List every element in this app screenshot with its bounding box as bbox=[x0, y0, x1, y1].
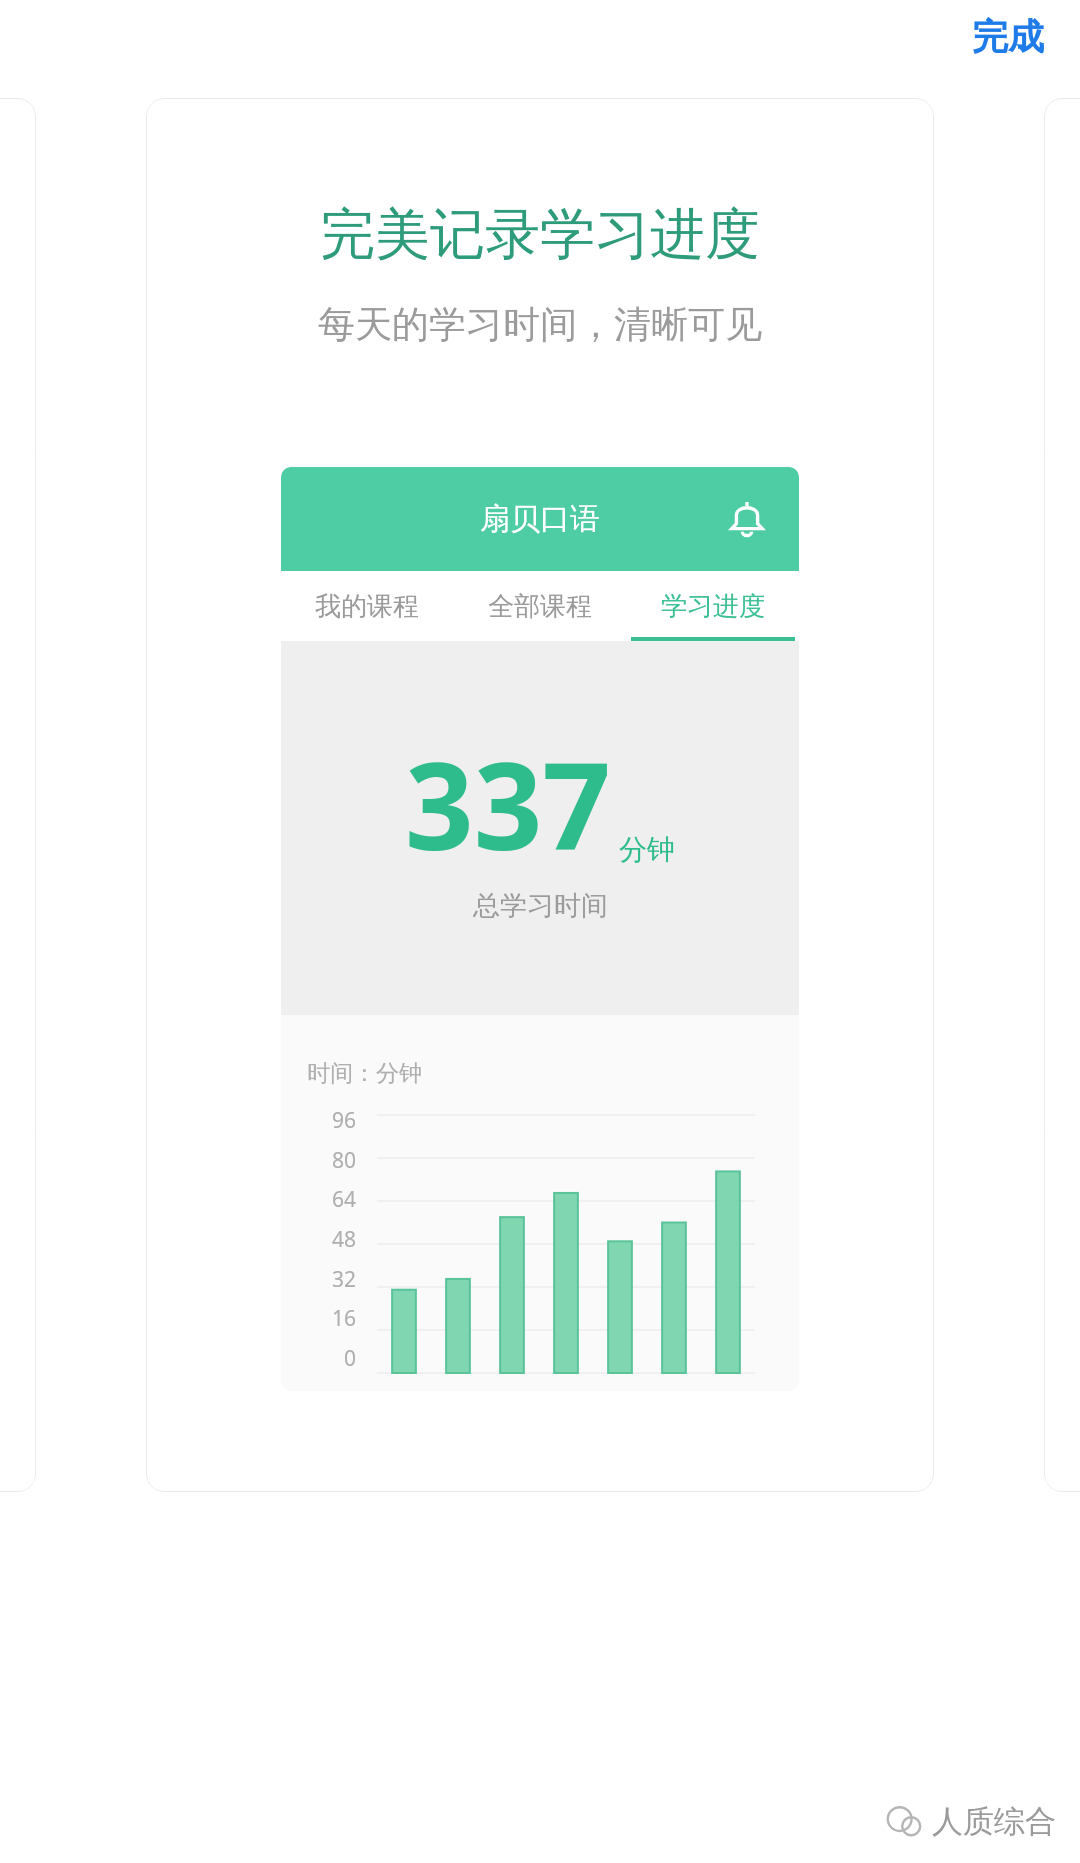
staticText: 时间：分钟 bbox=[307, 1059, 422, 1088]
staticText: 32 bbox=[332, 1265, 357, 1294]
button[interactable]: 我的课程 bbox=[281, 571, 453, 641]
staticText: 16 bbox=[332, 1304, 357, 1333]
button[interactable]: 完美记录学习进度 bbox=[146, 98, 934, 1492]
staticText: 人质综合 bbox=[932, 1802, 1056, 1841]
staticText: 64 bbox=[332, 1185, 357, 1214]
staticText: 80 bbox=[332, 1146, 357, 1175]
staticText: 完美记录学习进度 bbox=[320, 200, 760, 269]
button[interactable]: 完成 bbox=[958, 2, 1058, 71]
staticText: 全部课程 bbox=[488, 590, 592, 623]
staticText: 0 bbox=[344, 1344, 357, 1373]
button[interactable]: 学习进度 bbox=[626, 571, 799, 641]
staticText: 每天的学习时间，清晰可见 bbox=[318, 301, 762, 348]
staticText: 分钟 bbox=[619, 832, 675, 867]
staticText: 学习进度 bbox=[661, 590, 765, 623]
button[interactable]: Notifications bbox=[719, 491, 775, 547]
staticText: 96 bbox=[332, 1106, 357, 1135]
staticText: 337 bbox=[405, 722, 611, 885]
button[interactable]: 全部课程 bbox=[453, 571, 626, 641]
staticText: 我的课程 bbox=[315, 590, 419, 623]
staticText: 48 bbox=[332, 1225, 357, 1254]
staticText: 完成 bbox=[972, 14, 1044, 59]
staticText: 总学习时间 bbox=[473, 889, 608, 923]
staticText: 扇贝口语 bbox=[480, 500, 600, 538]
